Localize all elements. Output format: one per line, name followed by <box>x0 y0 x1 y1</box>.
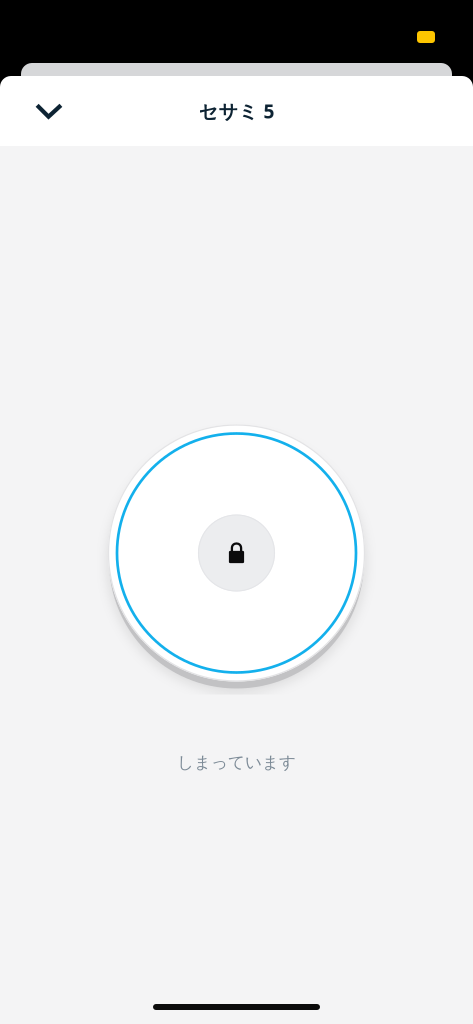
button[interactable]: Close <box>23 87 75 135</box>
button[interactable]: Lock <box>107 424 365 682</box>
staticText: セサミ 5 <box>198 98 274 124</box>
staticText: しまっています <box>177 752 296 773</box>
